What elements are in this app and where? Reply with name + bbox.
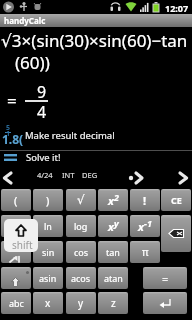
staticText: cos <box>74 246 89 258</box>
staticText: π <box>142 245 149 259</box>
staticText: abc <box>9 297 24 309</box>
staticText: INT <box>62 170 75 180</box>
button[interactable]: Fast forward <box>126 170 148 186</box>
button[interactable]: tab <box>1 241 31 263</box>
staticText: 1 <box>6 129 11 139</box>
staticText: shift <box>12 238 33 252</box>
button[interactable]: enter <box>143 292 187 314</box>
staticText: ) <box>46 193 50 208</box>
button[interactable]: x <box>33 292 63 314</box>
staticText: x <box>108 219 114 234</box>
staticText: CE <box>171 194 182 206</box>
staticText: 4/24 <box>37 170 53 180</box>
staticText: x <box>138 219 144 234</box>
button[interactable]: tan <box>98 241 128 263</box>
staticText: log <box>74 220 88 232</box>
button[interactable]: Solve it! <box>0 152 192 165</box>
button[interactable]: ( <box>1 189 31 211</box>
staticText: acos <box>71 272 91 284</box>
staticText: = <box>162 271 169 286</box>
button[interactable]: acos <box>66 267 96 289</box>
button[interactable]: Backspace <box>161 215 191 252</box>
button[interactable]: shift <box>1 215 31 237</box>
staticText: ! <box>143 193 147 208</box>
button[interactable]: shift <box>1 267 31 289</box>
staticText: 4 <box>37 101 47 123</box>
staticText: 1.8( <box>2 131 24 147</box>
button[interactable]: shift <box>4 219 38 252</box>
button[interactable]: atan <box>98 267 128 289</box>
staticText: DEG <box>82 170 98 180</box>
staticText: x <box>45 296 51 310</box>
button[interactable]: Next <box>172 170 192 186</box>
button[interactable]: x <box>98 215 128 237</box>
button[interactable]: y <box>66 292 96 314</box>
staticText: y <box>78 296 84 310</box>
staticText: x <box>108 193 114 208</box>
staticText: Make result decimal <box>25 129 115 142</box>
staticText: = <box>7 89 17 112</box>
staticText: Solve it! <box>26 151 61 164</box>
button[interactable]: 5 <box>0 119 192 149</box>
staticText: √ <box>77 193 85 207</box>
button[interactable]: equals <box>143 267 187 289</box>
button[interactable]: Previous <box>0 170 19 186</box>
button[interactable]: cos <box>66 241 96 263</box>
staticText: (60)) <box>15 51 50 74</box>
staticText: 5 <box>6 123 11 133</box>
staticText: handyCalc <box>4 15 46 26</box>
staticText: y <box>114 217 119 229</box>
staticText: tan <box>106 246 120 258</box>
button[interactable]: π <box>130 241 160 263</box>
staticText: -1 <box>144 217 152 229</box>
staticText: asin <box>39 272 57 284</box>
button[interactable]: square root <box>66 189 96 211</box>
staticText: 12:07 <box>165 2 189 14</box>
staticText: atan <box>104 272 123 284</box>
button[interactable]: handyCalc <box>0 14 192 27</box>
button[interactable]: ! <box>130 189 160 211</box>
button[interactable]: abc <box>1 292 31 314</box>
button[interactable]: ln <box>33 215 63 237</box>
staticText: √3×(sin(30)×sin(60)−tan <box>1 29 188 52</box>
staticText: z <box>111 296 116 310</box>
button[interactable]: log <box>66 215 96 237</box>
staticText: 9 <box>37 81 47 103</box>
staticText: 2 <box>114 191 119 203</box>
button[interactable]: x <box>130 215 160 237</box>
staticText: ln <box>44 220 52 232</box>
button[interactable]: sin <box>33 241 63 263</box>
button[interactable]: CE <box>161 189 191 211</box>
button[interactable]: ) <box>33 189 63 211</box>
staticText: sin <box>42 246 55 258</box>
button[interactable]: z <box>98 292 128 314</box>
button[interactable]: asin <box>33 267 63 289</box>
button[interactable]: x <box>98 189 128 211</box>
staticText: ( <box>14 193 18 208</box>
